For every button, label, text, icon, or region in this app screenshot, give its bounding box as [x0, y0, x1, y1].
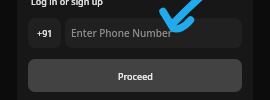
staticText: +91 — [37, 27, 53, 39]
staticText: Proceed — [118, 70, 153, 82]
staticText: Enter Phone Number — [71, 26, 172, 40]
button[interactable]: +91 — [28, 18, 61, 48]
button[interactable]: Proceed — [28, 59, 242, 92]
other: Arrow pointing to phone number field — [0, 0, 270, 100]
button[interactable]: Enter Phone Number — [65, 18, 242, 48]
staticText: Log in or sign up — [31, 0, 103, 7]
